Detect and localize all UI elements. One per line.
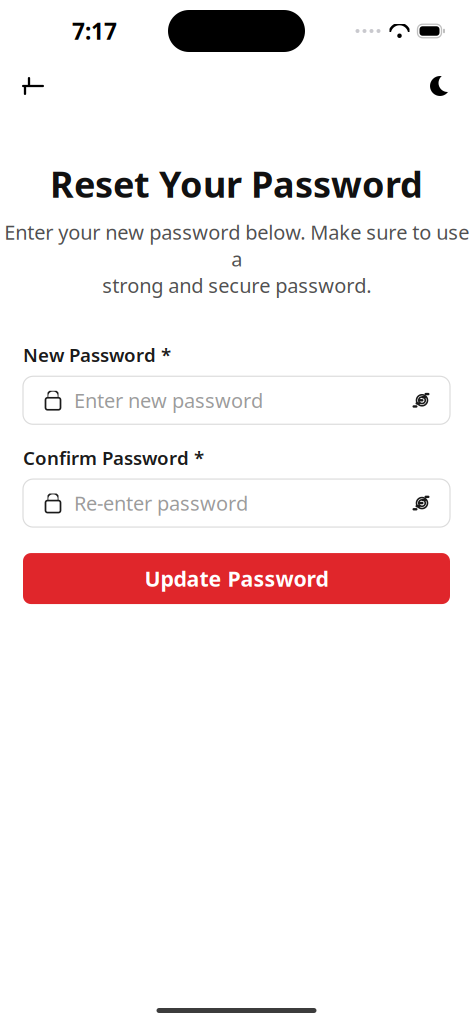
staticText: Confirm Password * (23, 445, 204, 470)
staticText: Reset Your Password (50, 160, 423, 208)
button[interactable]: Show password (406, 487, 438, 519)
staticText: Update Password (144, 564, 328, 593)
button[interactable]: Show password (406, 384, 438, 416)
button[interactable]: Back (11, 64, 55, 108)
staticText: Enter new password (74, 387, 263, 414)
button[interactable]: Update Password (23, 553, 450, 604)
staticText: Re-enter password (74, 490, 248, 516)
staticText: 7:17 (72, 16, 117, 46)
staticText: Enter your new password below. Make sure… (4, 219, 469, 298)
button[interactable]: Toggle dark mode (418, 64, 462, 108)
staticText: New Password * (23, 342, 171, 367)
